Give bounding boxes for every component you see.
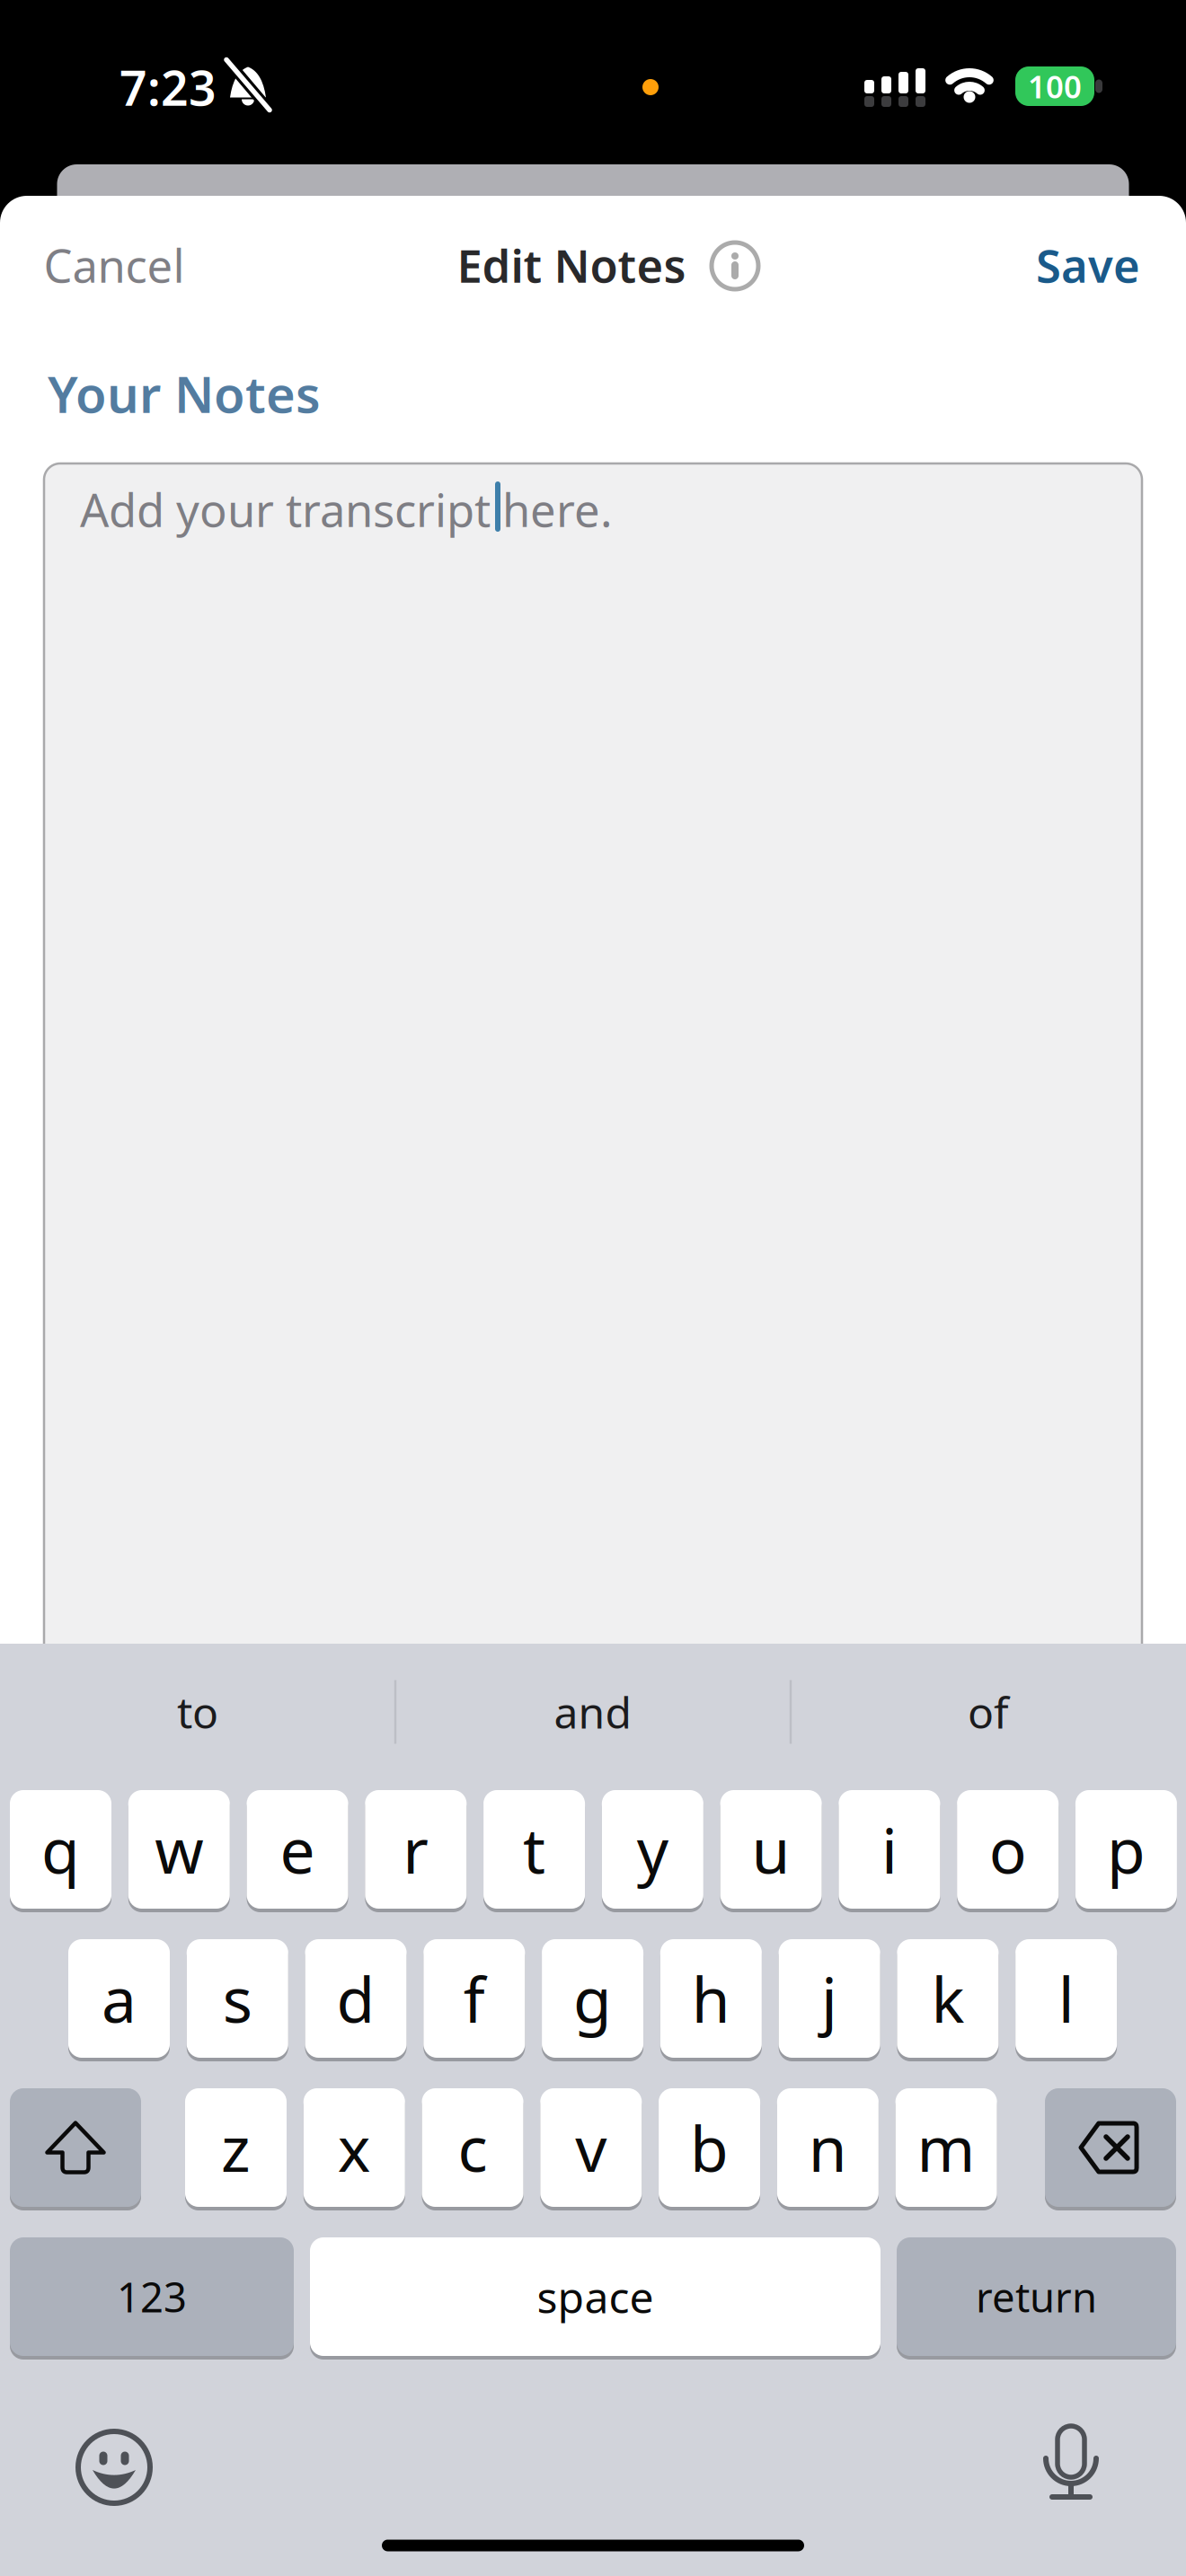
staticText: a xyxy=(102,1957,137,2040)
button[interactable]: s xyxy=(187,1937,288,2060)
staticText: h xyxy=(692,1957,730,2040)
staticText: d xyxy=(336,1957,375,2040)
button[interactable]: w xyxy=(128,1788,230,1910)
button[interactable]: v xyxy=(540,2086,642,2209)
staticText: 7:23 xyxy=(119,55,217,119)
button[interactable]: t xyxy=(483,1788,585,1910)
button[interactable]: to xyxy=(4,1663,391,1761)
staticText: b xyxy=(690,2106,729,2189)
staticText: of xyxy=(968,1683,1009,1741)
staticText: j xyxy=(821,1957,837,2040)
staticText: i xyxy=(881,1808,897,1891)
button[interactable]: q xyxy=(10,1788,111,1910)
staticText: f xyxy=(463,1957,485,2040)
staticText: q xyxy=(41,1808,80,1891)
staticText: 100 xyxy=(1028,66,1082,107)
button[interactable]: and xyxy=(400,1663,786,1761)
button[interactable]: Delete xyxy=(1045,2086,1176,2209)
button[interactable]: return xyxy=(897,2236,1176,2358)
button[interactable]: f xyxy=(423,1937,525,2060)
button[interactable]: j xyxy=(779,1937,880,2060)
staticText: to xyxy=(177,1683,218,1741)
staticText: 123 xyxy=(117,2270,187,2324)
staticText: Edit Notes xyxy=(457,235,686,295)
staticText: g xyxy=(573,1957,612,2040)
button[interactable]: o xyxy=(957,1788,1059,1910)
staticText: Cancel xyxy=(44,235,185,295)
staticText: u xyxy=(752,1808,790,1891)
staticText: v xyxy=(575,2106,607,2189)
button[interactable]: About Edit Notes xyxy=(712,243,758,289)
button[interactable]: c xyxy=(422,2086,523,2209)
staticText: c xyxy=(458,2106,487,2189)
staticText: and xyxy=(554,1683,632,1741)
staticText: r xyxy=(403,1808,429,1891)
button[interactable]: u xyxy=(720,1788,822,1910)
button[interactable]: Cancel xyxy=(44,235,185,295)
button[interactable]: i xyxy=(839,1788,940,1910)
button[interactable]: l xyxy=(1015,1937,1117,2060)
button[interactable]: x xyxy=(304,2086,405,2209)
staticText: o xyxy=(989,1808,1027,1891)
staticText: m xyxy=(917,2106,975,2189)
staticText: s xyxy=(223,1957,252,2040)
button[interactable]: k xyxy=(897,1937,999,2060)
staticText: k xyxy=(931,1957,964,2040)
button[interactable]: Emoji xyxy=(78,2431,150,2503)
button[interactable]: e xyxy=(247,1788,348,1910)
staticText: Add your transcript here. xyxy=(80,479,613,540)
staticText: p xyxy=(1107,1808,1145,1891)
staticText: e xyxy=(280,1808,315,1891)
staticText: x xyxy=(338,2106,371,2189)
button[interactable]: m xyxy=(895,2086,997,2209)
staticText: Save xyxy=(1036,235,1140,295)
button[interactable]: Save xyxy=(1036,235,1140,295)
staticText: y xyxy=(637,1808,668,1891)
staticText: space xyxy=(537,2268,654,2325)
button[interactable]: p xyxy=(1075,1788,1177,1910)
button[interactable]: 123 xyxy=(10,2236,294,2358)
button[interactable]: Shift xyxy=(10,2086,141,2209)
button[interactable]: d xyxy=(305,1937,407,2060)
staticText: l xyxy=(1058,1957,1074,2040)
button[interactable]: h xyxy=(660,1937,762,2060)
button[interactable]: a xyxy=(68,1937,170,2060)
staticText: n xyxy=(809,2106,847,2189)
staticText: z xyxy=(221,2106,251,2189)
button[interactable]: r xyxy=(365,1788,467,1910)
button[interactable]: g xyxy=(542,1937,643,2060)
button[interactable]: Dictation xyxy=(1044,2426,1098,2503)
button[interactable]: space xyxy=(310,2236,881,2358)
button[interactable]: b xyxy=(659,2086,760,2209)
button[interactable]: n xyxy=(777,2086,879,2209)
button[interactable]: of xyxy=(795,1663,1182,1761)
staticText: Your Notes xyxy=(48,360,321,427)
button[interactable]: y xyxy=(602,1788,703,1910)
staticText: return xyxy=(976,2270,1097,2324)
staticText: t xyxy=(523,1808,545,1891)
button[interactable]: z xyxy=(185,2086,287,2209)
staticText: w xyxy=(155,1808,203,1891)
